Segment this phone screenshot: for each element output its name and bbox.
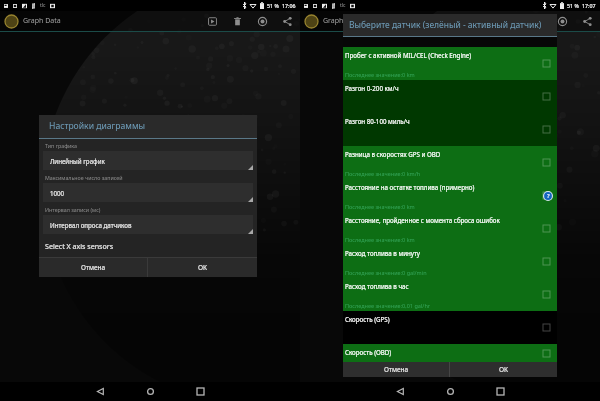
button[interactable]: Расстояние на остатке топлива (примерно) xyxy=(343,179,557,212)
button[interactable]: Record xyxy=(253,12,271,30)
staticText: Тип графика xyxy=(45,142,77,149)
button[interactable]: Back xyxy=(87,382,113,401)
staticText: Разгон 80-100 миль/ч xyxy=(345,117,410,125)
staticText: Интервал опроса датчиков xyxy=(50,221,132,229)
button[interactable]: 1000 xyxy=(43,183,253,202)
staticText: Graph Data xyxy=(323,16,361,26)
staticText: Расход топлива в час xyxy=(345,282,409,290)
button[interactable]: Расстояние, пройденное с момента сброса … xyxy=(343,212,557,245)
button[interactable]: Home xyxy=(437,382,463,401)
staticText: Отмена xyxy=(384,365,409,374)
staticText: Максимальное число записей xyxy=(45,174,123,181)
button[interactable]: Delete xyxy=(528,12,546,30)
button[interactable]: Back xyxy=(387,382,413,401)
staticText: Select X axis sensors xyxy=(45,241,114,251)
staticText: Настройки диаграммы xyxy=(49,120,146,132)
staticText: Последнее значение:0 km xyxy=(345,71,415,78)
button[interactable]: Скорость (GPS) xyxy=(343,311,557,344)
staticText: ? xyxy=(547,192,550,200)
staticText: Скорость (GPS) xyxy=(345,315,390,323)
button[interactable]: Отмена xyxy=(343,362,449,377)
staticText: Разница в скоростях GPS и OBD xyxy=(345,150,441,158)
staticText: Последнее значение:0 km/h xyxy=(345,170,421,177)
staticText: Последнее значение:0 km xyxy=(345,203,415,210)
button[interactable]: Разгон 80-100 миль/ч xyxy=(343,113,557,146)
button[interactable]: Разгон 0-200 км/ч xyxy=(343,80,557,113)
staticText: Линейный график xyxy=(50,157,105,165)
button[interactable]: Расход топлива в час xyxy=(343,278,557,311)
staticText: Graph Data xyxy=(23,16,61,26)
staticText: Расстояние на остатке топлива (примерно) xyxy=(345,183,475,191)
staticText: Скорость (OBD) xyxy=(345,348,392,356)
button[interactable]: Скорость (OBD) xyxy=(343,344,557,362)
button[interactable]: Интервал опроса датчиков xyxy=(43,215,253,234)
staticText: 17:06 xyxy=(282,2,296,9)
button[interactable]: Home xyxy=(137,382,163,401)
staticText: 51 % xyxy=(267,2,279,9)
staticText: Отмена xyxy=(81,263,106,272)
staticText: Расстояние, пройденное с момента сброса … xyxy=(345,216,500,224)
staticText: OK xyxy=(198,263,208,272)
button[interactable]: Select X axis sensors xyxy=(39,235,257,257)
staticText: 51 % xyxy=(567,2,579,9)
button[interactable]: Play xyxy=(203,12,221,30)
button[interactable]: Delete xyxy=(228,12,246,30)
button[interactable]: Расход топлива в минуту xyxy=(343,245,557,278)
staticText: tlc xyxy=(40,2,46,9)
button[interactable]: OK xyxy=(148,258,257,277)
button[interactable]: Отмена xyxy=(39,258,147,277)
staticText: Пробег с активной MIL/CEL (Check Engine) xyxy=(345,51,472,59)
staticText: Последнее значение:0 km xyxy=(345,236,415,243)
button[interactable]: Recents xyxy=(487,382,513,401)
staticText: Выберите датчик (зелёный - активный датч… xyxy=(349,19,542,31)
button[interactable]: Share xyxy=(278,12,296,30)
staticText: Разгон 0-200 км/ч xyxy=(345,84,399,92)
button[interactable]: OK xyxy=(450,362,557,377)
staticText: Интервал записи (мс) xyxy=(45,206,101,213)
button[interactable]: Recents xyxy=(187,382,213,401)
staticText: Последнее значение:0,01 gal/hr xyxy=(345,302,431,309)
staticText: OK xyxy=(499,365,509,374)
staticText: 1000 xyxy=(50,189,65,197)
staticText: tlc xyxy=(340,2,346,9)
button[interactable]: Разница в скоростях GPS и OBD xyxy=(343,146,557,179)
staticText: 17:07 xyxy=(582,2,596,9)
staticText: Последнее значение:0 gal/min xyxy=(345,269,427,276)
staticText: Расход топлива в минуту xyxy=(345,249,421,257)
button[interactable]: Play xyxy=(503,12,521,30)
button[interactable]: Линейный график xyxy=(43,151,253,170)
button[interactable]: Record xyxy=(553,12,571,30)
button[interactable]: Пробег с активной MIL/CEL (Check Engine) xyxy=(343,47,557,80)
button[interactable]: Share xyxy=(578,12,596,30)
